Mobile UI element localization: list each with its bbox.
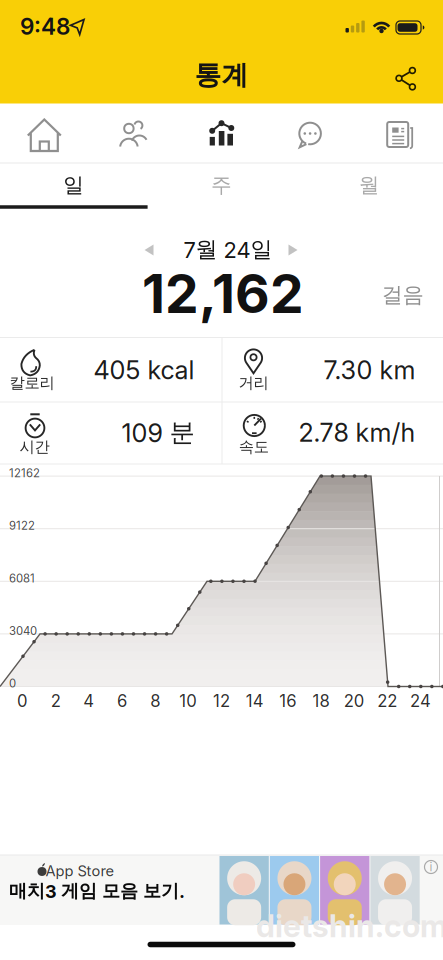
staticText: dietshin.com bbox=[256, 907, 443, 944]
staticText: 4 bbox=[83, 691, 94, 711]
staticText: App Store bbox=[45, 862, 114, 880]
button[interactable]: News bbox=[355, 106, 443, 164]
staticText: 16 bbox=[279, 691, 296, 711]
staticText: 주 bbox=[211, 172, 232, 198]
staticText: 7.30 km bbox=[323, 355, 415, 385]
staticText: 18 bbox=[312, 691, 329, 711]
staticText: 405 kcal bbox=[93, 355, 194, 385]
staticText: 거리 bbox=[238, 373, 268, 393]
staticText: 6 bbox=[117, 691, 127, 711]
staticText: 매치3 게임 모음 보기. bbox=[9, 880, 185, 902]
staticText: 통계 bbox=[194, 58, 248, 92]
staticText: 월 bbox=[359, 172, 380, 198]
staticText: 9:48 bbox=[20, 13, 70, 40]
button[interactable]: 매치3 게임 모음 보기 광고 bbox=[0, 855, 443, 925]
staticText: 걸음 bbox=[382, 282, 424, 308]
staticText: 10 bbox=[179, 691, 197, 711]
button[interactable]: 일 bbox=[0, 162, 148, 208]
button[interactable]: Home bbox=[0, 106, 88, 164]
button[interactable]: 주 bbox=[148, 162, 295, 208]
button[interactable]: Ad info bbox=[421, 857, 441, 877]
staticText: 8 bbox=[150, 691, 160, 711]
staticText: 시간 bbox=[19, 437, 49, 457]
button[interactable]: Chat bbox=[266, 106, 354, 164]
staticText: 칼로리 bbox=[9, 373, 54, 393]
staticText: 0 bbox=[17, 691, 28, 711]
staticText: 3040 bbox=[9, 624, 37, 638]
staticText: 22 bbox=[377, 691, 397, 711]
staticText: 2 bbox=[51, 691, 61, 711]
button[interactable]: Friends bbox=[89, 106, 177, 164]
staticText: 9122 bbox=[9, 519, 35, 532]
staticText: i bbox=[429, 860, 432, 874]
staticText: 12 bbox=[213, 691, 230, 711]
staticText: 12,162 bbox=[142, 261, 304, 326]
staticText: 0 bbox=[9, 677, 16, 690]
staticText: 일 bbox=[63, 172, 84, 198]
button[interactable]: Statistics bbox=[177, 106, 265, 164]
button[interactable]: Share bbox=[384, 56, 428, 100]
staticText: 20 bbox=[344, 691, 365, 711]
staticText: 12162 bbox=[9, 466, 40, 480]
staticText: 6081 bbox=[9, 571, 35, 585]
button[interactable]: Previous day bbox=[134, 235, 164, 265]
button[interactable]: Next day bbox=[278, 235, 308, 265]
staticText: 7월 24일 bbox=[183, 236, 272, 263]
staticText: 109 분 bbox=[121, 416, 194, 448]
staticText: 24 bbox=[410, 691, 431, 711]
button[interactable]: 월 bbox=[295, 162, 443, 208]
staticText: 2.78 km/h bbox=[298, 417, 415, 448]
staticText: 14 bbox=[246, 691, 264, 711]
staticText: 속도 bbox=[239, 437, 269, 457]
